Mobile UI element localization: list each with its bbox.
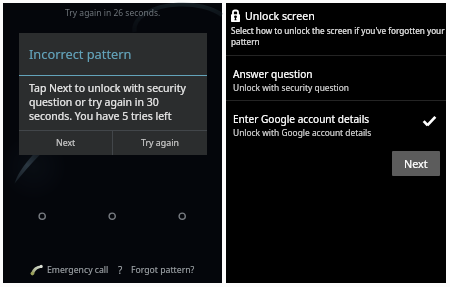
- other: Emergency call: [30, 264, 43, 276]
- staticText: Incorrect pattern: [29, 45, 132, 62]
- staticText: Next: [404, 156, 428, 171]
- button[interactable]: Forgot pattern?: [131, 264, 195, 276]
- button[interactable]: Emergency call: [30, 264, 109, 276]
- staticText: Try again: [141, 137, 179, 149]
- staticText: Try again in 26 seconds.: [65, 7, 161, 19]
- staticText: Tap Next to unlock with security questio…: [29, 81, 200, 123]
- staticText: Next: [56, 137, 76, 149]
- staticText: Select how to unlock the screen if you'v…: [231, 25, 445, 47]
- staticText: Unlock screen: [245, 9, 315, 23]
- button[interactable]: Next: [19, 131, 112, 155]
- button[interactable]: Answer question: [226, 56, 446, 100]
- staticText: Answer question: [233, 67, 313, 81]
- staticText: Unlock with security question: [233, 82, 350, 93]
- button[interactable]: Try again: [113, 131, 207, 155]
- button[interactable]: Help: [118, 263, 123, 277]
- staticText: Enter Google account details: [233, 112, 370, 126]
- button[interactable]: Enter Google account details: [226, 101, 446, 145]
- staticText: ?: [118, 263, 123, 277]
- staticText: Emergency call: [47, 264, 109, 276]
- staticText: Unlock with Google account details: [233, 127, 372, 138]
- button[interactable]: Next: [392, 151, 440, 176]
